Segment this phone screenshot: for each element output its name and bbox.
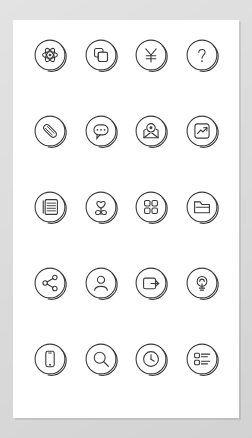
button[interactable]: Profile bbox=[80, 262, 122, 304]
button[interactable]: Help bbox=[181, 34, 223, 76]
button[interactable]: Share bbox=[29, 262, 71, 304]
button[interactable]: All apps bbox=[130, 186, 172, 228]
button[interactable]: Ideas bbox=[181, 262, 223, 304]
button[interactable]: Files bbox=[181, 186, 223, 228]
button[interactable]: History bbox=[130, 338, 172, 380]
button[interactable]: Payment bbox=[130, 34, 172, 76]
button[interactable]: Copy bbox=[80, 34, 122, 76]
button[interactable]: Wallet bbox=[130, 262, 172, 304]
button[interactable]: Mobile bbox=[29, 338, 71, 380]
button[interactable]: Documents bbox=[29, 186, 71, 228]
button[interactable]: Science bbox=[29, 34, 71, 76]
button[interactable]: Statistics bbox=[181, 110, 223, 152]
button[interactable]: Attachment bbox=[29, 110, 71, 152]
button[interactable]: Search bbox=[80, 338, 122, 380]
button[interactable]: List bbox=[181, 338, 223, 380]
button[interactable]: Location mail bbox=[130, 110, 172, 152]
button[interactable]: Favorites bbox=[80, 186, 122, 228]
button[interactable]: Messages bbox=[80, 110, 122, 152]
